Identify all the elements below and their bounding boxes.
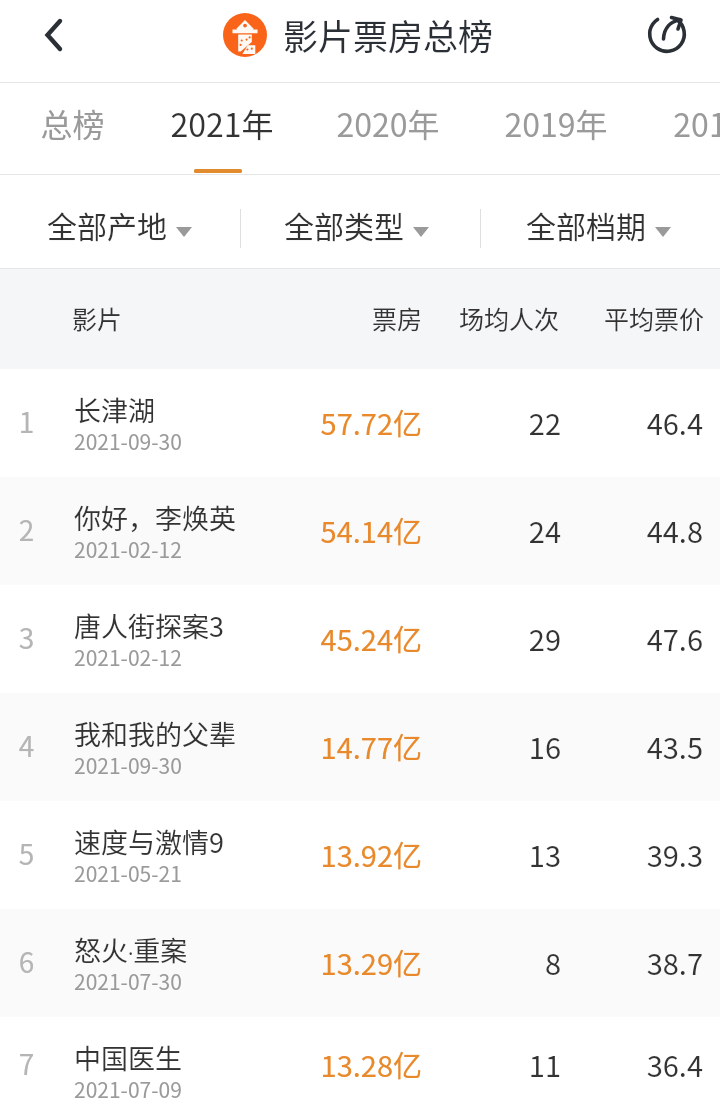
staticText: 36.4 [0, 1043, 703, 1085]
staticText: 2021-07-30 [74, 966, 182, 996]
staticText: 8 [0, 941, 561, 983]
button[interactable]: 3 [0, 585, 720, 693]
staticText: 票房 [0, 300, 422, 336]
staticText: 2020年 [336, 100, 440, 146]
staticText: 影片票房总榜 [283, 9, 494, 60]
staticText: 2021-07-09 [74, 1074, 182, 1104]
button[interactable]: 2020年 [328, 83, 448, 174]
staticText: 39.3 [0, 833, 703, 875]
staticText: 201 [673, 100, 720, 146]
staticText: 2021-02-12 [74, 534, 182, 564]
staticText: 14.77亿 [0, 725, 422, 767]
staticText: 2 [0, 509, 53, 550]
button[interactable]: 全部类型 [284, 200, 429, 243]
staticText: 我和我的父辈 [74, 714, 236, 753]
staticText: 43.5 [0, 725, 703, 767]
button[interactable]: Back [0, 0, 84, 82]
staticText: 速度与激情9 [74, 822, 224, 861]
button[interactable]: 总榜 [12, 83, 132, 174]
button[interactable]: 201 [640, 83, 720, 174]
staticText: 唐人街探案3 [74, 606, 224, 645]
staticText: 13.29亿 [0, 941, 422, 983]
staticText: 2021年 [170, 100, 274, 146]
button[interactable]: 5 [0, 801, 720, 909]
button[interactable]: 2021年 [162, 83, 282, 174]
staticText: 影片 [72, 300, 123, 336]
staticText: 11 [0, 1043, 561, 1085]
staticText: 总榜 [40, 100, 105, 146]
staticText: 全部档期 [526, 203, 646, 246]
staticText: 长津湖 [74, 390, 155, 429]
staticText: 全部类型 [284, 203, 404, 246]
staticText: 2021-02-12 [74, 642, 182, 672]
staticText: 怒火·重案 [74, 930, 188, 969]
button[interactable]: 全部产地 [47, 200, 192, 243]
button[interactable]: Share [614, 0, 720, 82]
staticText: 38.7 [0, 941, 703, 983]
staticText: 47.6 [0, 617, 703, 659]
staticText: 13.28亿 [0, 1043, 422, 1085]
button[interactable]: 4 [0, 693, 720, 801]
staticText: 2021-09-30 [74, 750, 182, 780]
staticText: 1 [0, 401, 53, 442]
staticText: 你好，李焕英 [74, 498, 236, 537]
button[interactable]: 6 [0, 909, 720, 1017]
staticText: 45.24亿 [0, 617, 422, 659]
staticText: 57.72亿 [0, 401, 422, 443]
staticText: 平均票价 [0, 300, 704, 336]
staticText: 5 [0, 833, 53, 874]
staticText: 场均人次 [0, 300, 559, 336]
staticText: 中国医生 [74, 1038, 182, 1077]
button[interactable]: 2019年 [496, 83, 616, 174]
staticText: 24 [0, 509, 561, 551]
staticText: 6 [0, 941, 53, 982]
button[interactable]: 全部档期 [526, 200, 671, 243]
staticText: 29 [0, 617, 561, 659]
staticText: 16 [0, 725, 561, 767]
staticText: 22 [0, 401, 561, 443]
staticText: 4 [0, 725, 53, 766]
staticText: 2021-09-30 [74, 426, 182, 456]
staticText: 44.8 [0, 509, 703, 551]
button[interactable]: 2 [0, 477, 720, 585]
button[interactable]: 7 [0, 1017, 720, 1113]
staticText: 3 [0, 617, 53, 658]
staticText: 13 [0, 833, 561, 875]
staticText: 2019年 [504, 100, 608, 146]
staticText: 46.4 [0, 401, 703, 443]
staticText: 2021-05-21 [74, 858, 182, 888]
staticText: 54.14亿 [0, 509, 422, 551]
button[interactable]: 1 [0, 369, 720, 477]
staticText: 全部产地 [47, 203, 167, 246]
staticText: 7 [0, 1043, 53, 1084]
staticText: 13.92亿 [0, 833, 422, 875]
